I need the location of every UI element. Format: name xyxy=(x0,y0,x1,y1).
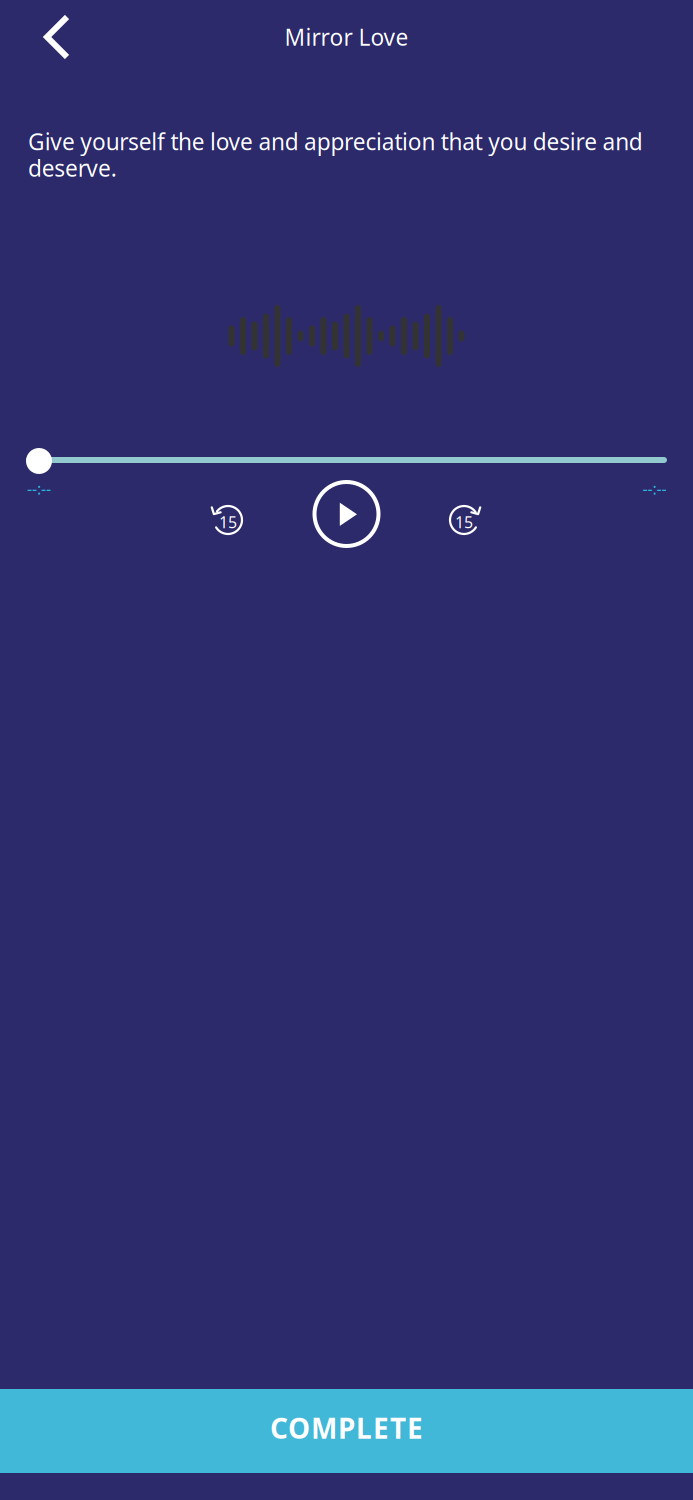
button[interactable]: Skip back 15 seconds xyxy=(210,502,246,538)
staticText: 15 xyxy=(219,511,237,533)
button[interactable]: Play xyxy=(312,480,380,548)
staticText: --:-- xyxy=(27,478,51,499)
staticText: --:-- xyxy=(642,478,666,499)
staticText: 15 xyxy=(455,511,473,533)
staticText: Give yourself the love and appreciation … xyxy=(28,126,643,156)
button[interactable]: Back xyxy=(24,4,90,70)
staticText: Mirror Love xyxy=(284,22,408,52)
button[interactable]: Skip forward 15 seconds xyxy=(446,502,482,538)
button[interactable]: COMPLETE xyxy=(0,1389,693,1473)
staticText: COMPLETE xyxy=(270,1409,423,1447)
staticText: deserve. xyxy=(28,153,117,183)
